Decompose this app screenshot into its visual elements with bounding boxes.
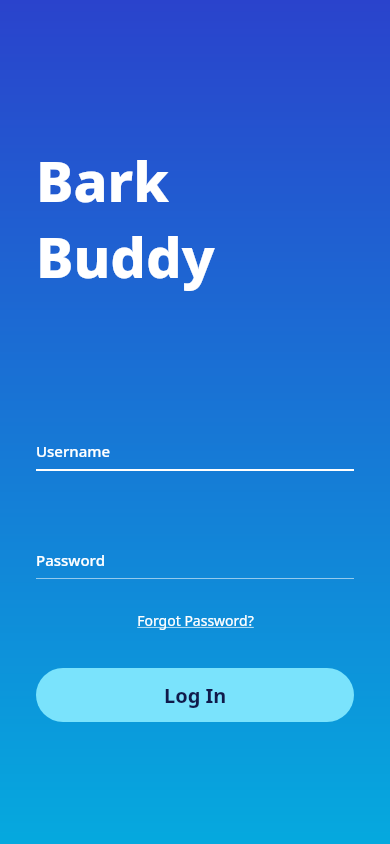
button[interactable]: Forgot Password? bbox=[36, 611, 354, 630]
staticText: Password bbox=[36, 550, 105, 570]
button[interactable]: Username bbox=[36, 441, 354, 471]
staticText: Log In bbox=[164, 682, 227, 709]
button[interactable]: Log In bbox=[36, 668, 354, 722]
button[interactable]: Password bbox=[36, 550, 354, 579]
staticText: Username bbox=[36, 441, 111, 461]
staticText: Forgot Password? bbox=[137, 611, 254, 630]
staticText: Bark Buddy bbox=[36, 142, 354, 294]
